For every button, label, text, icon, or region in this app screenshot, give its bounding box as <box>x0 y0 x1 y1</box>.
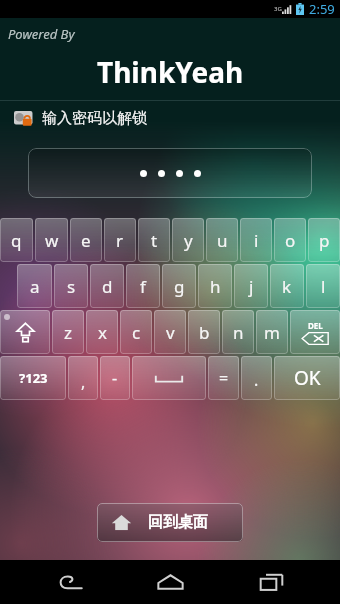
staticText: 3G <box>274 5 282 13</box>
staticText: l <box>321 275 326 298</box>
staticText: 回到桌面 <box>148 513 208 532</box>
button[interactable]: Space <box>132 356 206 400</box>
staticText: q <box>11 229 22 252</box>
staticText: f <box>140 275 146 298</box>
button[interactable]: = <box>208 356 239 400</box>
button[interactable]: r <box>104 218 136 262</box>
button[interactable]: y <box>172 218 204 262</box>
staticText: Powered By <box>8 25 75 43</box>
button[interactable]: z <box>52 310 84 354</box>
button[interactable]: Home <box>139 560 201 604</box>
staticText: = <box>219 367 229 389</box>
staticText: e <box>81 229 91 252</box>
staticText: , <box>81 371 86 393</box>
button[interactable]: j <box>234 264 268 308</box>
staticText: y <box>184 229 193 252</box>
staticText: u <box>217 229 228 252</box>
staticText: - <box>112 367 118 389</box>
staticText: h <box>210 275 221 298</box>
button[interactable]: v <box>154 310 186 354</box>
button[interactable]: s <box>54 264 88 308</box>
staticText: a <box>30 275 40 298</box>
button[interactable]: OK <box>274 356 340 400</box>
button[interactable]: u <box>206 218 238 262</box>
button[interactable]: a <box>17 264 52 308</box>
button[interactable]: c <box>120 310 152 354</box>
button[interactable]: p <box>308 218 340 262</box>
button[interactable]: . <box>241 356 272 400</box>
button[interactable]: Back <box>39 560 101 604</box>
staticText: 输入密码以解锁 <box>42 109 147 128</box>
staticText: ThinkYeah <box>97 53 244 91</box>
button[interactable]: t <box>138 218 170 262</box>
button[interactable]: 回到桌面 <box>97 503 243 542</box>
staticText: n <box>233 321 244 344</box>
staticText: o <box>285 229 296 252</box>
button[interactable]: q <box>0 218 33 262</box>
button[interactable]: Shift <box>0 310 50 354</box>
staticText: d <box>102 275 113 298</box>
button[interactable]: ?123 <box>0 356 66 400</box>
staticText: s <box>67 275 76 298</box>
button[interactable]: Delete <box>290 310 340 354</box>
staticText: w <box>45 229 59 252</box>
button[interactable]: d <box>90 264 124 308</box>
button[interactable]: b <box>188 310 220 354</box>
staticText: c <box>132 321 141 344</box>
button[interactable]: f <box>126 264 160 308</box>
button[interactable]: o <box>274 218 306 262</box>
staticText: p <box>319 229 330 252</box>
staticText: 2:59 <box>309 0 335 18</box>
staticText: i <box>254 229 259 252</box>
button[interactable]: w <box>35 218 68 262</box>
staticText: m <box>264 321 280 344</box>
staticText: OK <box>294 365 321 391</box>
button[interactable]: k <box>270 264 304 308</box>
staticText: g <box>174 275 185 298</box>
staticText: DEL <box>308 320 323 331</box>
button[interactable]: l <box>306 264 340 308</box>
staticText: r <box>116 229 124 252</box>
button[interactable]: m <box>256 310 288 354</box>
staticText: ?123 <box>19 369 48 387</box>
button[interactable]: Password input <box>28 148 312 198</box>
staticText: k <box>282 275 292 298</box>
button[interactable]: , <box>68 356 98 400</box>
button[interactable]: - <box>100 356 130 400</box>
staticText: x <box>98 321 107 344</box>
button[interactable]: Recent apps <box>240 560 302 604</box>
staticText: . <box>254 369 259 391</box>
staticText: j <box>249 275 254 298</box>
staticText: v <box>166 321 175 344</box>
button[interactable]: g <box>162 264 196 308</box>
button[interactable]: i <box>240 218 272 262</box>
button[interactable]: x <box>86 310 118 354</box>
button[interactable]: n <box>222 310 254 354</box>
staticText: t <box>151 229 158 252</box>
button[interactable]: e <box>70 218 102 262</box>
staticText: b <box>199 321 210 344</box>
staticText: z <box>64 321 72 344</box>
button[interactable]: h <box>198 264 232 308</box>
